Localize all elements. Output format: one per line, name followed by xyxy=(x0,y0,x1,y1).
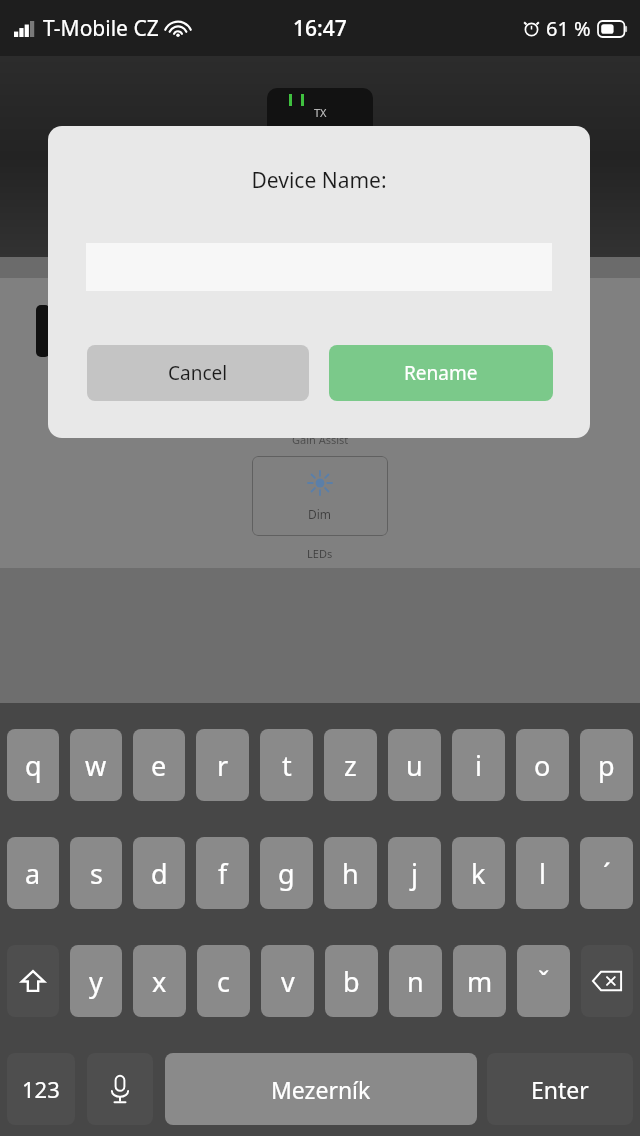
button[interactable]: g xyxy=(260,837,313,909)
staticText: o xyxy=(534,747,551,784)
staticText: h xyxy=(342,855,359,892)
staticText: ˇ xyxy=(538,963,550,1000)
staticText: j xyxy=(411,855,418,892)
button[interactable]: a xyxy=(7,837,59,909)
staticText: x xyxy=(152,963,167,1000)
staticText: f xyxy=(218,855,228,892)
button[interactable]: Dim xyxy=(252,456,388,536)
button[interactable]: m xyxy=(453,945,506,1017)
button[interactable]: Shift xyxy=(7,945,59,1017)
staticText: s xyxy=(90,855,103,892)
button[interactable]: k xyxy=(452,837,505,909)
button[interactable]: p xyxy=(580,729,633,801)
button[interactable]: o xyxy=(516,729,569,801)
button[interactable]: ´ xyxy=(580,837,633,909)
staticText: q xyxy=(25,747,42,784)
button[interactable]: t xyxy=(260,729,313,801)
staticText: k xyxy=(471,855,486,892)
button[interactable]: j xyxy=(388,837,441,909)
button[interactable]: Backspace xyxy=(581,945,633,1017)
staticText: e xyxy=(151,747,167,784)
button[interactable]: w xyxy=(70,729,122,801)
staticText: y xyxy=(89,963,103,1000)
button[interactable]: Numbers xyxy=(7,1053,75,1125)
staticText: Dim xyxy=(308,506,332,522)
staticText: Mezerník xyxy=(271,1074,371,1105)
staticText: c xyxy=(217,963,230,1000)
staticText: i xyxy=(475,747,482,784)
staticText: Rename xyxy=(404,360,478,386)
button[interactable]: x xyxy=(133,945,186,1017)
button[interactable]: u xyxy=(388,729,441,801)
staticText: Gain Assist xyxy=(292,432,349,447)
staticText: v xyxy=(281,963,295,1000)
button[interactable]: e xyxy=(133,729,185,801)
button[interactable]: z xyxy=(324,729,377,801)
staticText: ´ xyxy=(603,855,611,892)
staticText: u xyxy=(406,747,423,784)
button[interactable]: Voice input xyxy=(87,1053,153,1125)
staticText: b xyxy=(343,963,360,1000)
button[interactable]: Mezerník xyxy=(165,1053,477,1125)
button[interactable]: r xyxy=(196,729,249,801)
button[interactable]: c xyxy=(197,945,250,1017)
staticText: l xyxy=(539,855,546,892)
staticText: r xyxy=(217,747,229,784)
staticText: w xyxy=(85,747,107,784)
staticText: 123 xyxy=(22,1074,60,1104)
button[interactable]: h xyxy=(324,837,377,909)
button[interactable]: y xyxy=(70,945,122,1017)
staticText: LEDs xyxy=(307,546,333,561)
button[interactable]: ˇ xyxy=(517,945,570,1017)
staticText: Device Name: xyxy=(251,166,387,195)
button[interactable]: d xyxy=(133,837,185,909)
button[interactable]: s xyxy=(70,837,122,909)
button[interactable]: Enter xyxy=(487,1053,633,1125)
staticText: d xyxy=(151,855,168,892)
staticText: TX xyxy=(314,105,327,120)
button[interactable]: f xyxy=(196,837,249,909)
staticText: Cancel xyxy=(168,360,228,386)
button[interactable]: b xyxy=(325,945,378,1017)
button[interactable]: Rename xyxy=(329,345,553,401)
staticText: 16:47 xyxy=(293,14,347,43)
staticText: 61 % xyxy=(546,15,591,42)
staticText: T-Mobile CZ xyxy=(43,14,159,43)
staticText: m xyxy=(467,963,493,1000)
staticText: g xyxy=(278,855,295,892)
button[interactable]: l xyxy=(516,837,569,909)
button[interactable]: n xyxy=(389,945,442,1017)
button[interactable]: i xyxy=(452,729,505,801)
button[interactable]: v xyxy=(261,945,314,1017)
button[interactable]: Cancel xyxy=(87,345,309,401)
staticText: Enter xyxy=(531,1074,589,1105)
staticText: p xyxy=(598,747,615,784)
staticText: n xyxy=(407,963,424,1000)
staticText: a xyxy=(25,855,41,892)
staticText: z xyxy=(344,747,357,784)
button[interactable]: q xyxy=(7,729,59,801)
staticText: t xyxy=(282,747,292,784)
